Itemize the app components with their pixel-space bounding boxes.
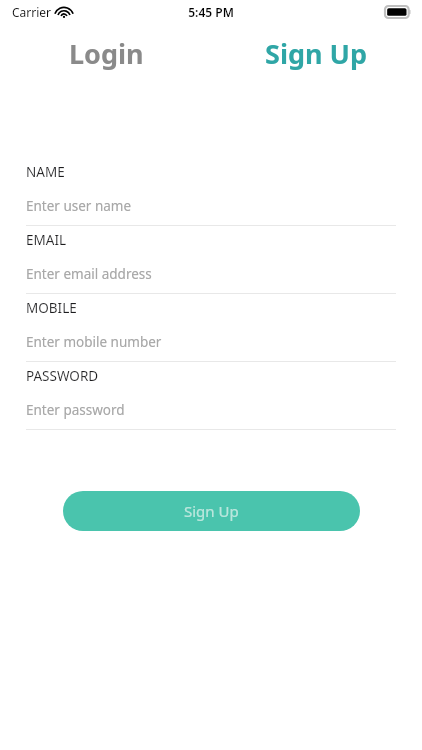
- button[interactable]: Enter user name: [26, 196, 396, 216]
- staticText: Enter email address: [26, 265, 152, 283]
- staticText: Sign Up: [184, 501, 239, 521]
- staticText: MOBILE: [26, 299, 77, 317]
- staticText: Enter password: [26, 401, 125, 419]
- staticText: Enter user name: [26, 197, 132, 215]
- button[interactable]: Sign Up: [246, 30, 386, 76]
- staticText: PASSWORD: [26, 367, 99, 385]
- button[interactable]: Enter password: [26, 400, 396, 420]
- staticText: NAME: [26, 163, 65, 181]
- staticText: Sign Up: [265, 35, 368, 72]
- staticText: 5:45 PM: [188, 4, 234, 20]
- staticText: EMAIL: [26, 231, 67, 249]
- staticText: Carrier: [12, 4, 52, 20]
- button[interactable]: Login: [46, 30, 166, 76]
- staticText: Enter mobile number: [26, 333, 162, 351]
- button[interactable]: Enter email address: [26, 264, 396, 284]
- staticText: Login: [69, 35, 144, 72]
- button[interactable]: Enter mobile number: [26, 332, 396, 352]
- button[interactable]: Sign Up: [63, 491, 360, 531]
